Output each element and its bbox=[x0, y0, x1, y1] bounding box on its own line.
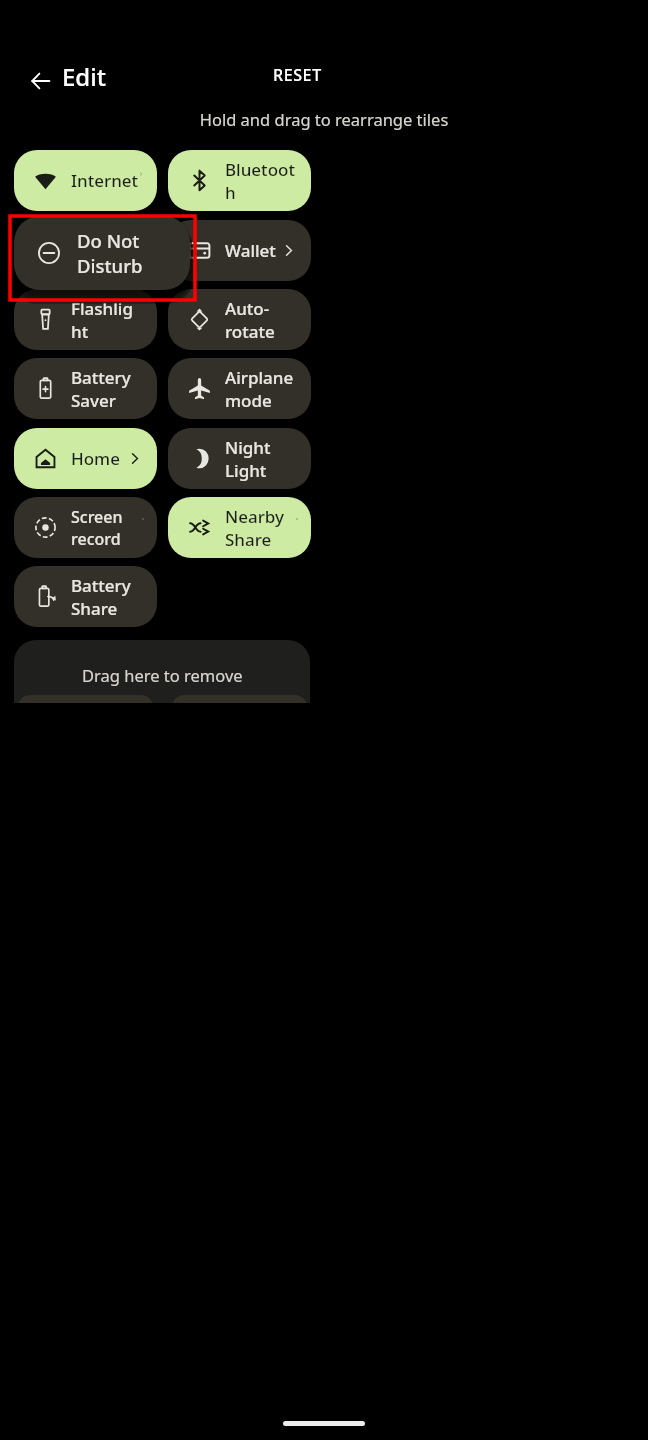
button[interactable]: RESET bbox=[273, 64, 322, 86]
button[interactable]: Bluetooth bbox=[168, 150, 311, 211]
button[interactable]: Nearby Share bbox=[168, 497, 311, 558]
button[interactable]: Do Not Disturb bbox=[14, 216, 190, 290]
staticText: Home bbox=[71, 447, 120, 470]
button[interactable]: Internet bbox=[14, 150, 157, 211]
staticText: RESET bbox=[273, 64, 322, 86]
staticText: Wallet bbox=[225, 239, 276, 262]
button[interactable]: Drag here to remove bbox=[14, 640, 310, 703]
button[interactable]: Screen record bbox=[14, 497, 157, 558]
staticText: Internet bbox=[71, 169, 139, 192]
staticText: Drag here to remove bbox=[82, 664, 243, 686]
button[interactable]: Battery Share bbox=[14, 566, 157, 627]
staticText: Edit bbox=[62, 60, 106, 93]
staticText: Screen record bbox=[71, 506, 143, 550]
staticText: Night Light bbox=[225, 436, 297, 482]
button[interactable]: Wallet bbox=[168, 220, 311, 281]
button[interactable]: Battery Saver bbox=[14, 358, 157, 419]
staticText: Flashlight bbox=[71, 297, 143, 343]
button[interactable]: Airplane mode bbox=[168, 358, 311, 419]
staticText: Nearby Share bbox=[225, 505, 297, 551]
staticText: Airplane mode bbox=[225, 366, 297, 412]
button[interactable]: Back bbox=[19, 59, 63, 103]
button[interactable]: Home bbox=[14, 428, 157, 489]
button[interactable]: Flashlight bbox=[14, 289, 157, 350]
staticText: Hold and drag to rearrange tiles bbox=[0, 108, 648, 130]
staticText: Battery Saver bbox=[71, 366, 143, 412]
staticText: Auto-rotate bbox=[225, 297, 297, 343]
staticText: Battery Share bbox=[71, 574, 143, 620]
button[interactable]: Night Light bbox=[168, 428, 311, 489]
staticText: Bluetooth bbox=[225, 158, 297, 204]
staticText: Do Not Disturb bbox=[77, 228, 176, 278]
button[interactable]: Auto-rotate bbox=[168, 289, 311, 350]
